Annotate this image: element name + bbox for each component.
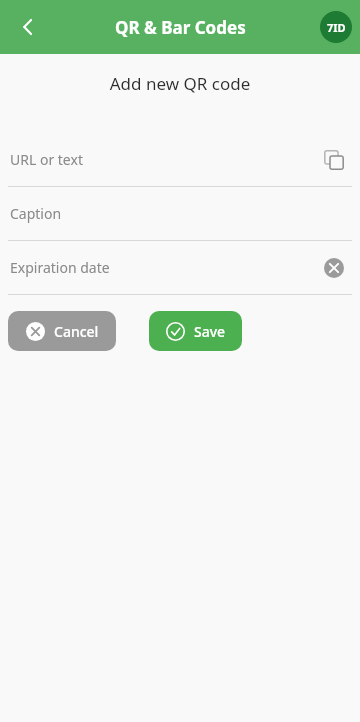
button[interactable]: URL or text bbox=[0, 133, 360, 186]
staticText: URL or text bbox=[10, 150, 320, 169]
button[interactable]: 7ID profile bbox=[320, 11, 352, 43]
staticText: 7ID bbox=[327, 20, 346, 35]
staticText: QR & Bar Codes bbox=[115, 16, 246, 39]
button[interactable]: Caption bbox=[0, 187, 360, 240]
staticText: Caption bbox=[10, 204, 348, 223]
button[interactable]: Clear expiration date bbox=[320, 254, 348, 282]
button[interactable]: Back bbox=[6, 5, 50, 49]
button[interactable]: Expiration date bbox=[0, 241, 360, 294]
button[interactable]: Paste from clipboard bbox=[320, 146, 348, 174]
staticText: Expiration date bbox=[10, 258, 320, 277]
button[interactable]: Save bbox=[149, 311, 242, 351]
staticText: Cancel bbox=[54, 322, 99, 341]
staticText: Save bbox=[194, 322, 226, 341]
button[interactable]: Cancel bbox=[8, 311, 116, 351]
staticText: Add new QR code bbox=[0, 72, 360, 95]
